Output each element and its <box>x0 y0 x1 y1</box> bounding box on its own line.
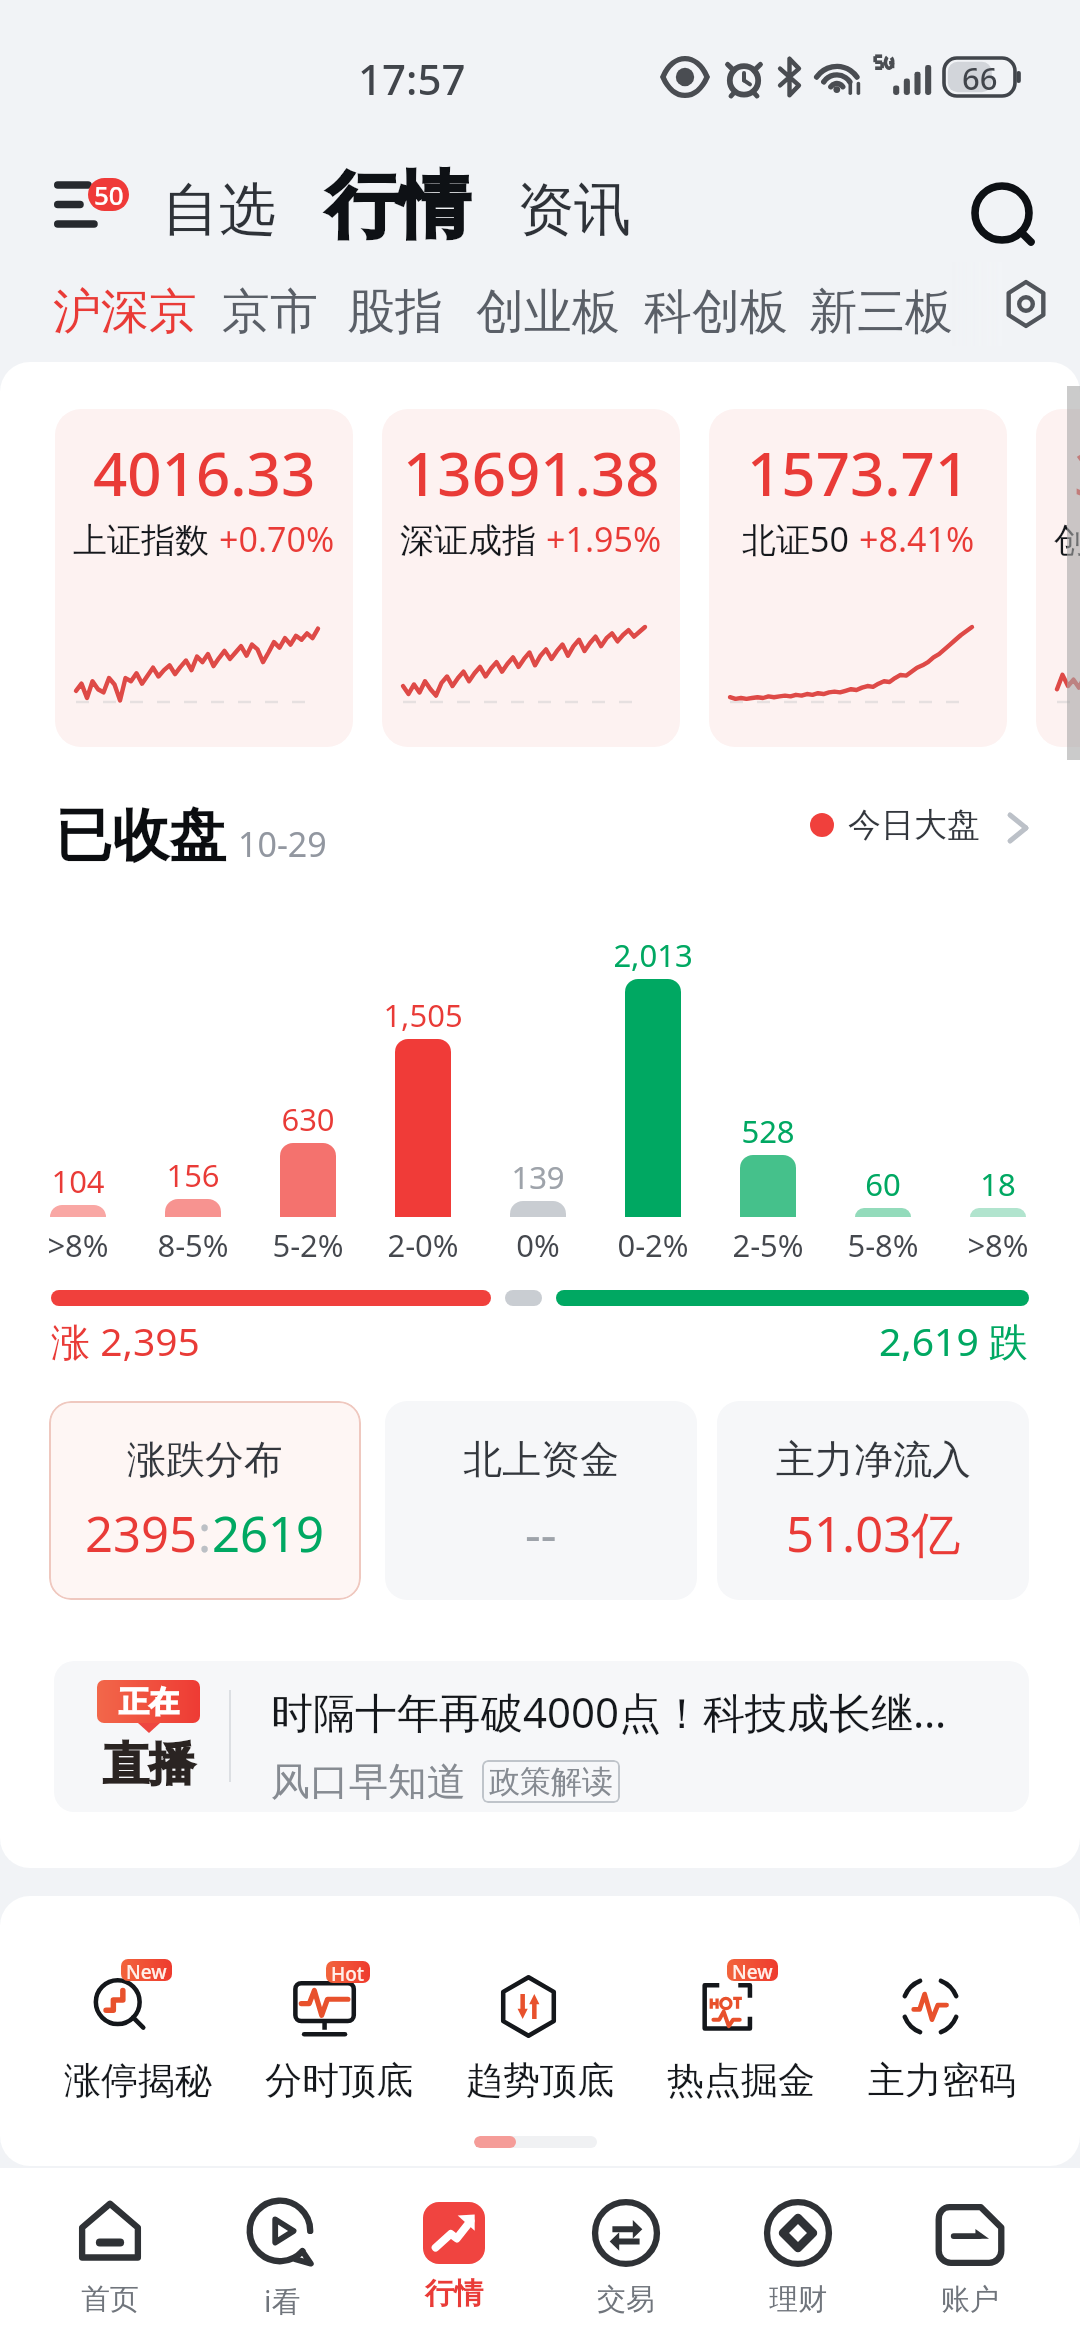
staticText: 沪深京 <box>53 282 197 342</box>
staticText: 科创板 <box>644 282 788 342</box>
staticText: : <box>198 1500 212 1567</box>
staticText: 正在 <box>119 1683 179 1721</box>
button[interactable]: 8-5% <box>136 922 250 1267</box>
button[interactable]: New <box>38 1959 238 2104</box>
button[interactable]: 正在 <box>54 1661 1029 1812</box>
staticText: 1573.71 <box>747 432 970 514</box>
button[interactable]: 0-2% <box>596 922 710 1267</box>
staticText: New <box>126 1959 167 1981</box>
button[interactable]: Search <box>944 167 1060 267</box>
button[interactable]: 行情 <box>368 2168 540 2340</box>
button[interactable]: 行情 <box>320 155 476 258</box>
staticText: 5-2% <box>272 1224 344 1266</box>
button[interactable]: 4016.33 <box>55 409 353 747</box>
staticText: 趋势顶底 <box>466 2057 614 2104</box>
staticText: 北上资金 <box>463 1435 619 1484</box>
button[interactable]: 主力密码 <box>842 1959 1042 2104</box>
button[interactable]: 科创板 <box>630 272 802 352</box>
staticText: 5-8% <box>847 1224 919 1266</box>
staticText: 8-5% <box>157 1224 229 1266</box>
staticText: 热点掘金 <box>667 2057 815 2104</box>
button[interactable]: 5-8% <box>826 922 940 1267</box>
button[interactable]: 3152.08 <box>1036 409 1080 747</box>
button[interactable]: 首页 <box>24 2168 196 2340</box>
staticText: +1.95% <box>546 516 662 562</box>
staticText: New <box>732 1959 773 1981</box>
staticText: 涨 2,395 <box>51 1314 200 1367</box>
button[interactable]: Market settings <box>990 268 1062 340</box>
staticText: 京市 <box>222 282 318 342</box>
staticText: 涨跌分布 <box>127 1435 283 1484</box>
staticText: 0% <box>516 1224 560 1266</box>
staticText: +0.70% <box>219 516 335 562</box>
staticText: 2395 <box>85 1500 198 1567</box>
button[interactable]: >8% <box>941 922 1055 1267</box>
staticText: 行情 <box>326 161 470 252</box>
button[interactable]: 北上资金 <box>385 1401 697 1600</box>
staticText: 139 <box>511 1156 565 1198</box>
staticText: 3152.08 <box>1074 432 1080 514</box>
button[interactable]: 0% <box>481 922 595 1267</box>
button[interactable]: i看 <box>196 2168 368 2340</box>
staticText: -- <box>525 1500 557 1567</box>
button[interactable]: 主力净流入 <box>717 1401 1029 1600</box>
staticText: 直播 <box>103 1736 195 1794</box>
staticText: 13691.38 <box>403 432 660 514</box>
button[interactable]: 资讯 <box>511 168 637 252</box>
button[interactable]: 京市 <box>208 272 332 352</box>
button[interactable]: 2-5% <box>711 922 825 1267</box>
staticText: 0-2% <box>617 1224 689 1266</box>
staticText: +8.41% <box>859 516 975 562</box>
button[interactable]: 股指 <box>333 272 457 352</box>
button[interactable]: 创业板 <box>462 272 634 352</box>
staticText: 理财 <box>769 2281 827 2318</box>
staticText: 已收盘 <box>55 800 226 872</box>
button[interactable]: 涨跌分布 <box>49 1401 361 1600</box>
staticText: 2-0% <box>387 1224 459 1266</box>
button[interactable]: 沪深京 <box>39 272 211 352</box>
staticText: 104 <box>51 1160 105 1202</box>
staticText: 51.03亿 <box>786 1500 961 1567</box>
staticText: 首页 <box>81 2281 139 2318</box>
button[interactable]: 今日大盘 <box>806 800 1033 850</box>
staticText: 交易 <box>597 2281 655 2318</box>
staticText: 18 <box>980 1163 1016 1205</box>
staticText: 股指 <box>347 282 443 342</box>
staticText: 今日大盘 <box>848 804 980 846</box>
staticText: 主力密码 <box>868 2057 1016 2104</box>
button[interactable]: 账户 <box>884 2168 1056 2340</box>
staticText: >8% <box>47 1224 109 1266</box>
button[interactable]: 新三板 <box>795 272 967 352</box>
button[interactable]: 5-2% <box>251 922 365 1267</box>
staticText: 2,013 <box>613 934 693 976</box>
button[interactable]: 自选 <box>156 168 282 252</box>
button[interactable]: 趋势顶底 <box>440 1959 640 2104</box>
button[interactable]: Menu <box>38 160 148 250</box>
staticText: 行情 <box>425 2275 483 2312</box>
staticText: 政策解读 <box>489 1762 613 1801</box>
button[interactable]: 2-0% <box>366 922 480 1267</box>
staticText: 时隔十年再破4000点！科技成长继… <box>271 1683 947 1740</box>
staticText: 2619 <box>212 1500 325 1567</box>
staticText: 528 <box>741 1110 795 1152</box>
staticText: 创业板 <box>476 282 620 342</box>
button[interactable]: 1573.71 <box>709 409 1007 747</box>
staticText: Hot <box>331 1961 365 1983</box>
staticText: 2,619 跌 <box>879 1314 1028 1367</box>
staticText: i看 <box>264 2281 301 2321</box>
staticText: 自选 <box>162 174 276 246</box>
button[interactable]: Hot <box>239 1959 439 2104</box>
staticText: 主力净流入 <box>776 1435 971 1484</box>
button[interactable]: 交易 <box>540 2168 712 2340</box>
staticText: 上证指数 <box>73 519 209 562</box>
staticText: 50 <box>94 178 124 210</box>
button[interactable]: >8% <box>21 922 135 1267</box>
staticText: 10-29 <box>238 821 327 867</box>
staticText: >8% <box>967 1224 1029 1266</box>
staticText: 60 <box>865 1163 901 1205</box>
button[interactable]: New <box>641 1959 841 2104</box>
button[interactable]: 理财 <box>712 2168 884 2340</box>
staticText: 账户 <box>941 2281 999 2318</box>
staticText: 630 <box>281 1098 335 1140</box>
button[interactable]: 13691.38 <box>382 409 680 747</box>
